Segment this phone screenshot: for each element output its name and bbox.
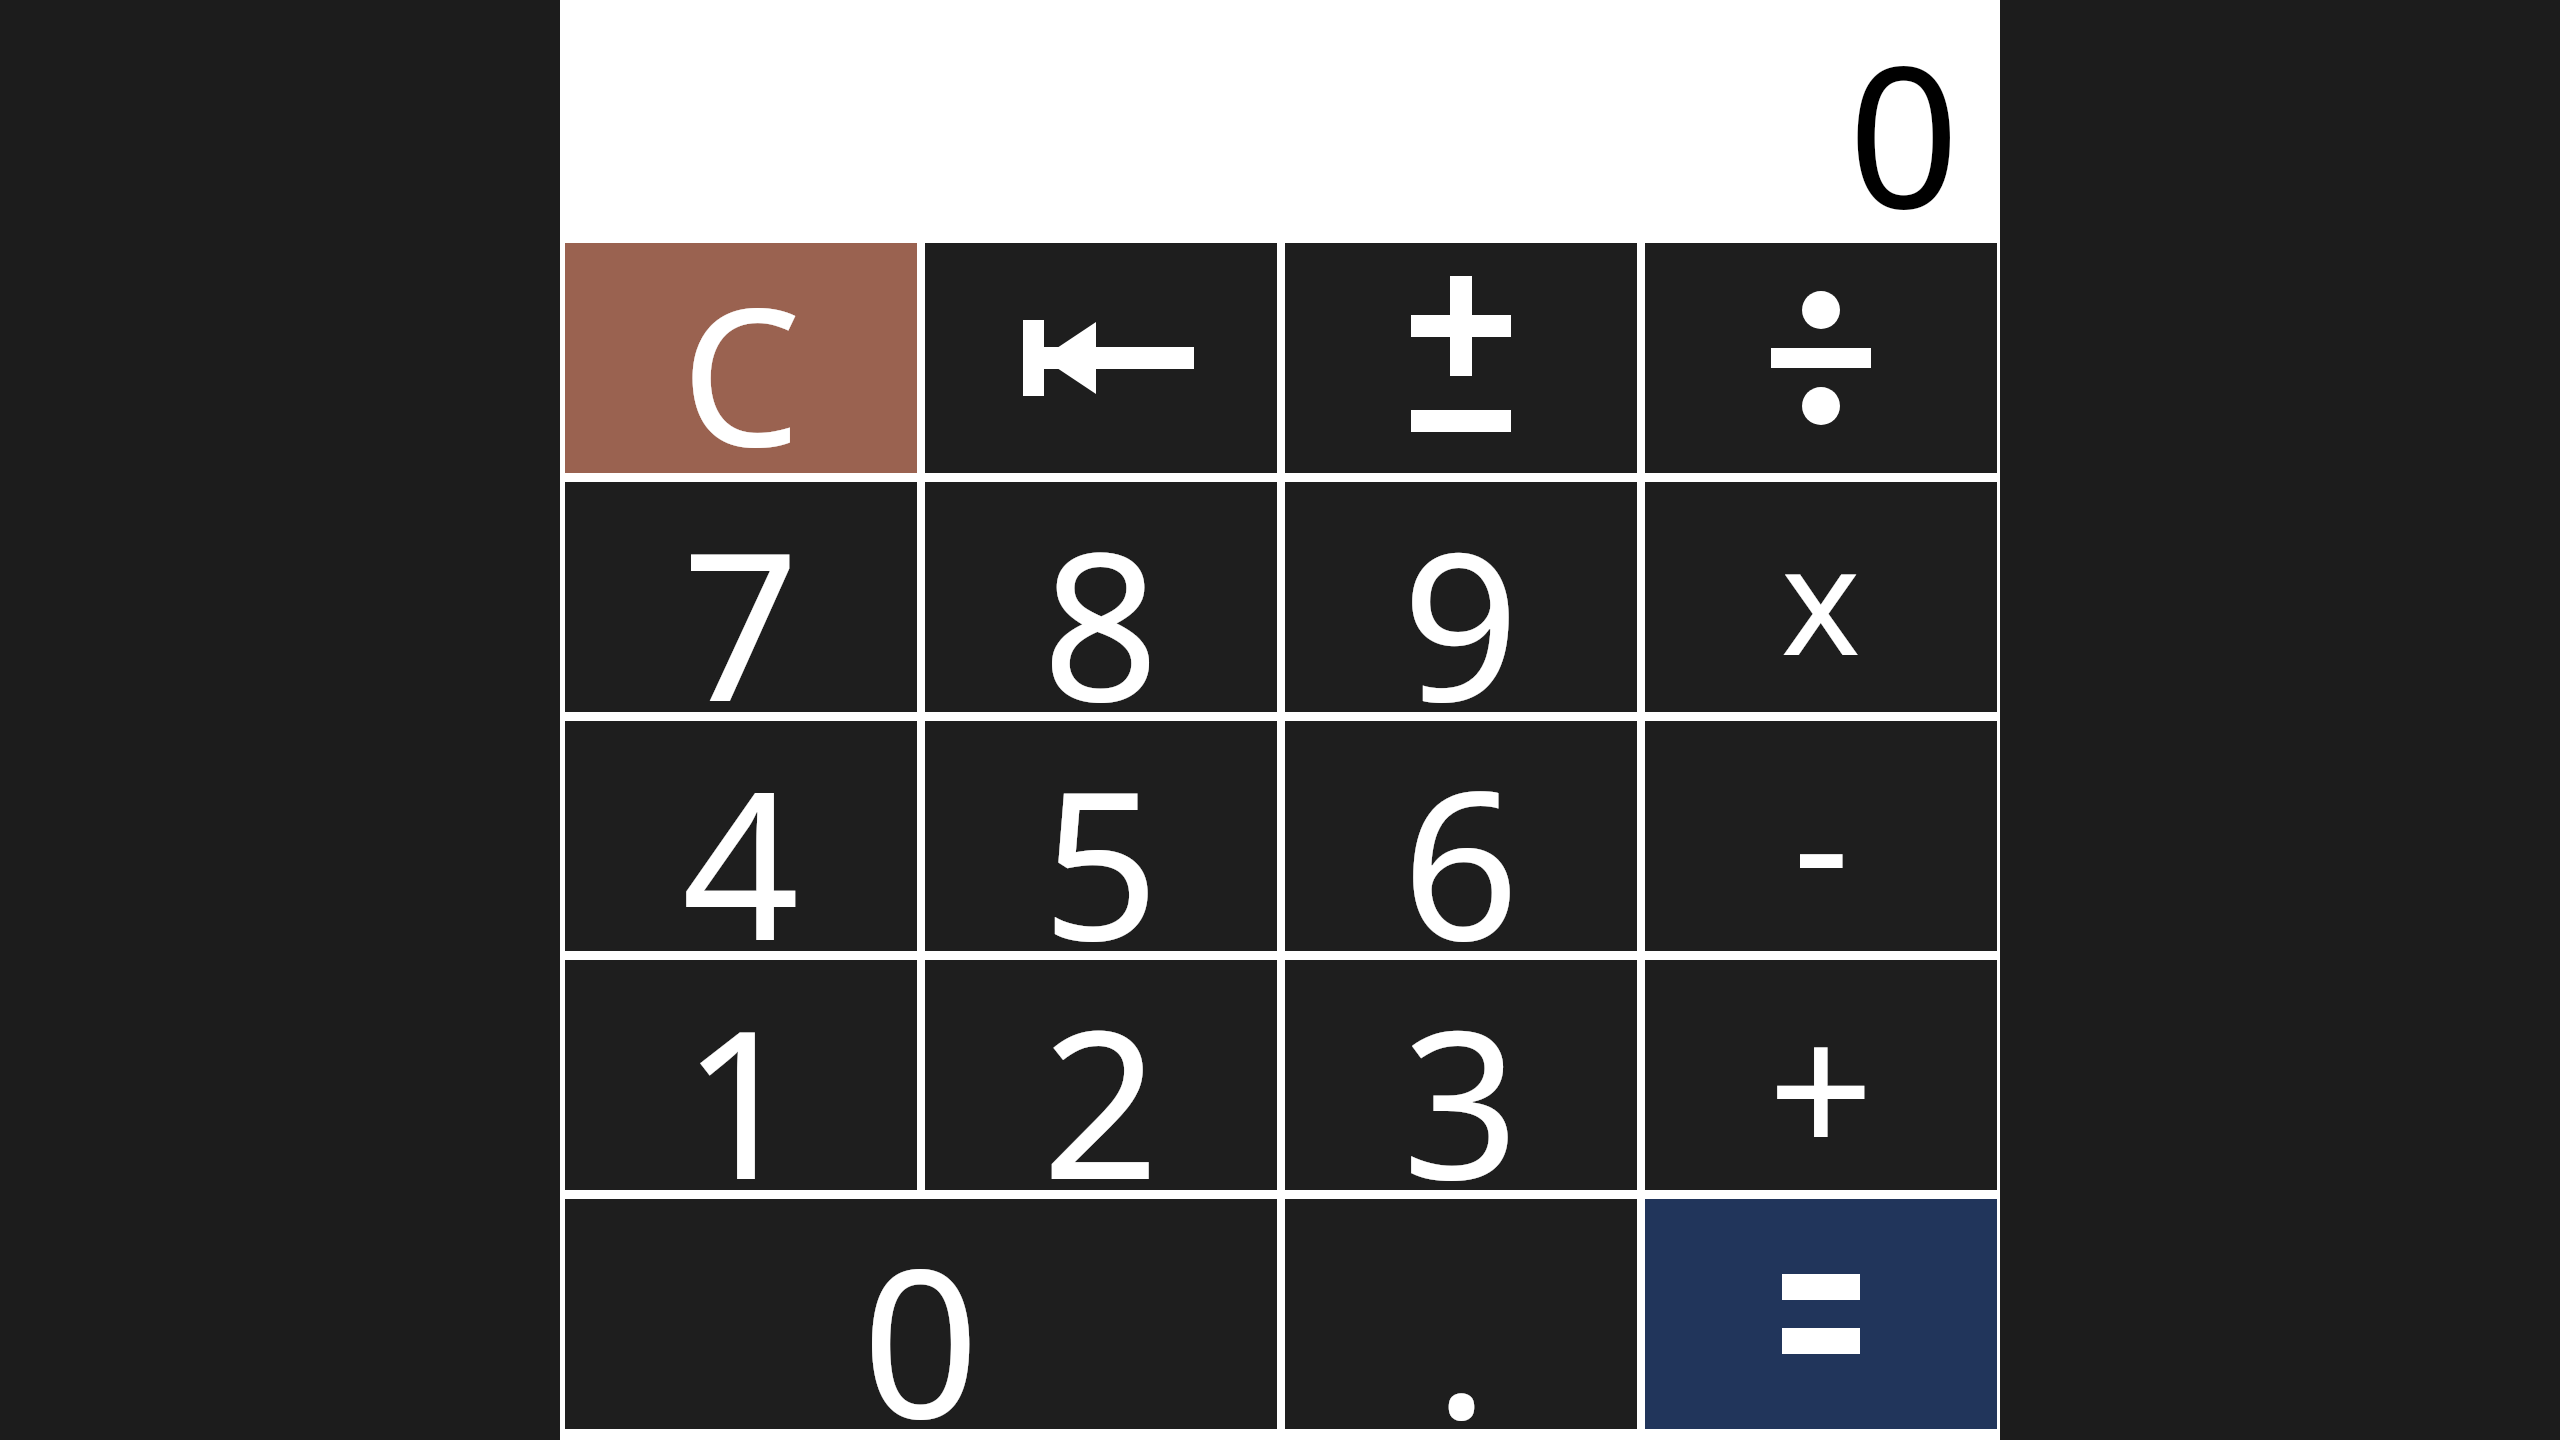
button[interactable]: 2: [925, 960, 1277, 1190]
staticText: +: [1768, 960, 1874, 1190]
button[interactable]: 7: [565, 482, 917, 712]
staticText: x: [1781, 495, 1861, 699]
button[interactable]: Equals: [1645, 1199, 1997, 1429]
staticText: 6: [1402, 721, 1520, 951]
button[interactable]: -: [1645, 721, 1997, 951]
button[interactable]: x: [1645, 482, 1997, 712]
button[interactable]: 9: [1285, 482, 1637, 712]
staticText: 3: [1402, 960, 1520, 1190]
staticText: 5: [1042, 721, 1160, 951]
button[interactable]: 0: [565, 1199, 1277, 1429]
button[interactable]: C: [565, 243, 917, 473]
staticText: -: [1793, 721, 1850, 951]
button[interactable]: Divide: [1645, 243, 1997, 473]
staticText: 1: [682, 960, 800, 1190]
staticText: 9: [1402, 482, 1520, 712]
button[interactable]: Backspace: [925, 243, 1277, 473]
staticText: 7: [682, 482, 800, 712]
button[interactable]: 3: [1285, 960, 1637, 1190]
staticText: 0: [862, 1199, 980, 1429]
button[interactable]: 8: [925, 482, 1277, 712]
staticText: 4: [682, 721, 800, 951]
button[interactable]: 4: [565, 721, 917, 951]
staticText: 8: [1042, 482, 1160, 712]
button[interactable]: +: [1645, 960, 1997, 1190]
staticText: C: [681, 243, 802, 473]
staticText: 0: [1848, 0, 1960, 231]
staticText: .: [1434, 1199, 1489, 1429]
button[interactable]: 1: [565, 960, 917, 1190]
button[interactable]: 5: [925, 721, 1277, 951]
button[interactable]: 6: [1285, 721, 1637, 951]
staticText: 2: [1042, 960, 1160, 1190]
button[interactable]: .: [1285, 1199, 1637, 1429]
button[interactable]: Toggle sign: [1285, 243, 1637, 473]
